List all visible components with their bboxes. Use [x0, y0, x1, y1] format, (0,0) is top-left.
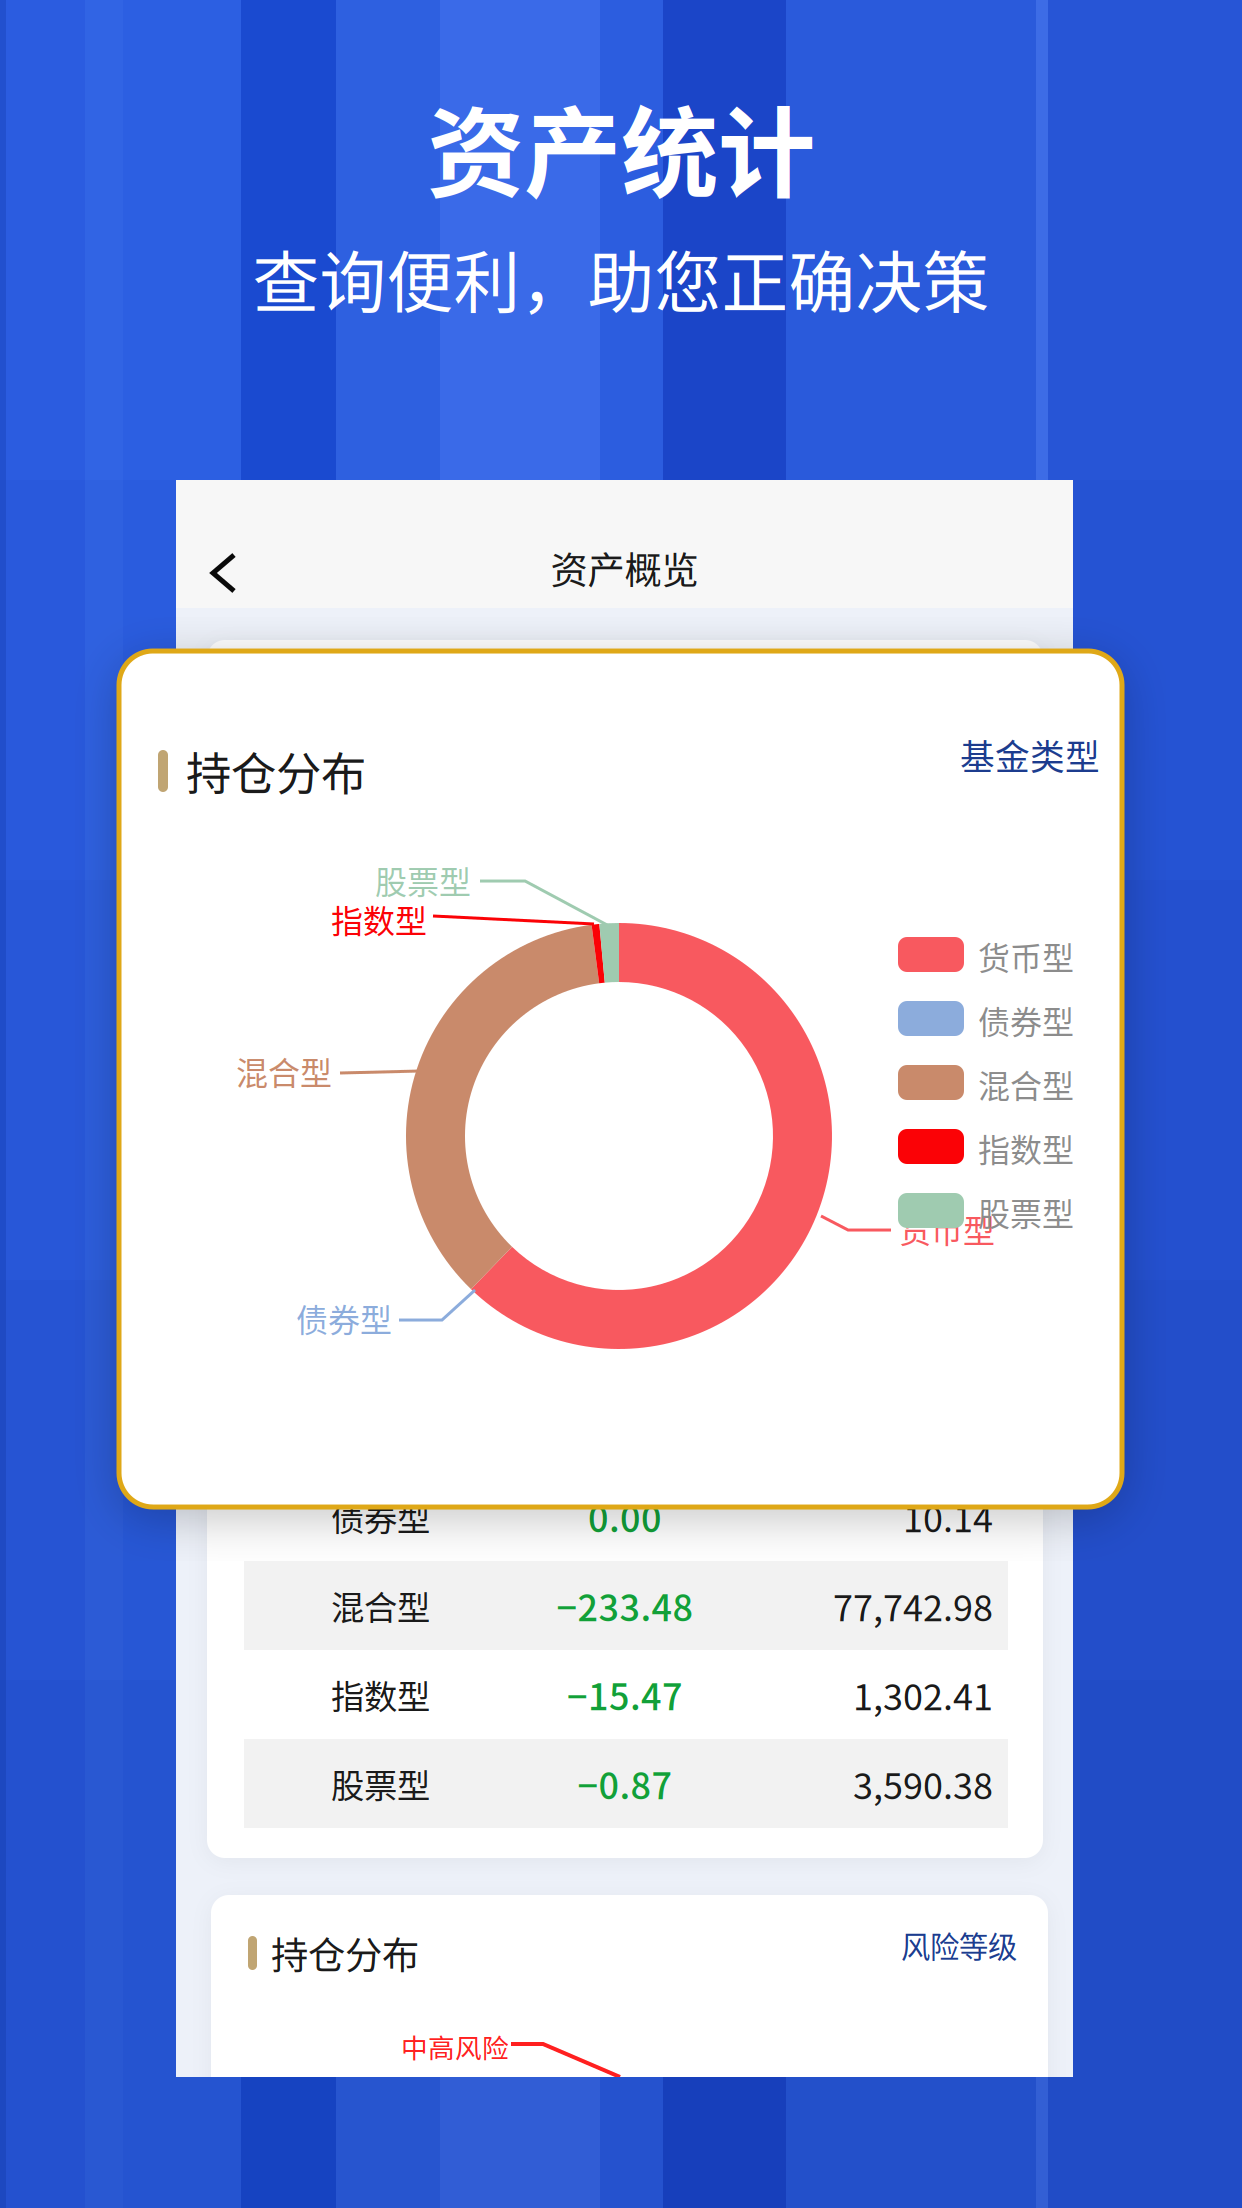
- staticText: −15.47: [567, 1668, 683, 1720]
- staticText: 混合型: [978, 1061, 1074, 1107]
- staticText: 货币型: [978, 933, 1074, 979]
- staticText: 10.14: [903, 1490, 993, 1542]
- staticText: 货币型: [899, 1206, 995, 1252]
- button[interactable]: 基金类型: [960, 732, 1100, 778]
- staticText: 3,590.38: [853, 1757, 993, 1809]
- staticText: 指数型: [331, 1670, 430, 1719]
- staticText: 股票型: [978, 1189, 1074, 1235]
- staticText: 77,742.98: [833, 1579, 993, 1631]
- staticText: 指数型: [978, 1125, 1074, 1171]
- staticText: −233.48: [556, 1579, 693, 1631]
- staticText: 风险等级: [901, 1924, 1017, 1966]
- staticText: 债券型: [331, 1492, 430, 1541]
- staticText: 查询便利，助您正确决策: [252, 230, 989, 326]
- staticText: 债券型: [296, 1295, 392, 1341]
- staticText: 债券型: [978, 997, 1074, 1043]
- staticText: 股票型: [375, 857, 471, 903]
- staticText: 持仓分布: [271, 1926, 419, 1980]
- staticText: −0.87: [577, 1757, 672, 1809]
- staticText: 1,302.41: [853, 1668, 993, 1720]
- staticText: 资产统计: [427, 76, 815, 217]
- button[interactable]: 风险等级: [887, 1926, 1017, 1964]
- staticText: 中高风险: [401, 2027, 509, 2066]
- staticText: 0.00: [588, 1490, 662, 1542]
- staticText: 混合型: [331, 1581, 430, 1630]
- staticText: 基金类型: [960, 730, 1100, 780]
- button[interactable]: 返回: [176, 480, 275, 608]
- staticText: 持仓分布: [186, 738, 366, 804]
- staticText: 资产概览: [550, 541, 698, 595]
- staticText: 混合型: [236, 1048, 332, 1094]
- staticText: 指数型: [331, 896, 427, 942]
- staticText: 股票型: [331, 1759, 430, 1808]
